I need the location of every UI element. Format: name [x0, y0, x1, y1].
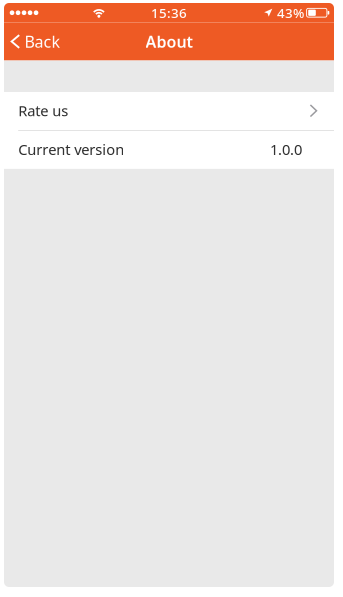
staticText: 15:36: [151, 4, 187, 22]
staticText: About: [145, 31, 192, 52]
staticText: 1.0.0: [270, 140, 302, 159]
staticText: 43%: [277, 4, 304, 22]
staticText: Rate us: [18, 101, 68, 120]
button[interactable]: Rate us: [4, 92, 334, 130]
staticText: Current version: [18, 140, 124, 159]
button[interactable]: Back: [4, 22, 70, 60]
staticText: Back: [25, 31, 61, 52]
